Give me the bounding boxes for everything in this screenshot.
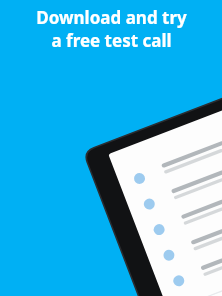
staticText: Download and try — [36, 6, 187, 29]
staticText: a free test call — [51, 29, 172, 52]
